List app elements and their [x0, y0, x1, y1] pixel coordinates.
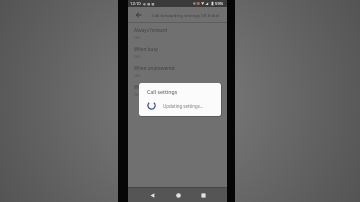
button[interactable]	[128, 7, 150, 22]
staticText: 59%	[215, 1, 224, 7]
staticText: Updating settings...	[163, 103, 204, 109]
staticText: Off	[134, 73, 141, 79]
staticText: Off	[134, 92, 141, 98]
staticText: 12:10	[130, 1, 141, 7]
button[interactable]: When busy	[128, 42, 227, 61]
staticText: Call forwarding settings (VI India)	[152, 12, 220, 18]
staticText: When busy	[134, 46, 158, 52]
button[interactable]: Always forward	[128, 23, 227, 42]
staticText: Off	[134, 35, 141, 41]
staticText: Call settings	[147, 88, 178, 95]
staticText: Always forward	[134, 27, 168, 33]
staticText: When unreachable	[134, 84, 175, 90]
button[interactable]	[146, 189, 158, 201]
button[interactable]: When unreachable	[128, 80, 227, 99]
staticText: When unanswered	[134, 65, 175, 71]
staticText: Off	[134, 54, 141, 60]
button[interactable]	[197, 189, 209, 201]
button[interactable]	[172, 189, 184, 201]
button[interactable]: When unanswered	[128, 61, 227, 80]
